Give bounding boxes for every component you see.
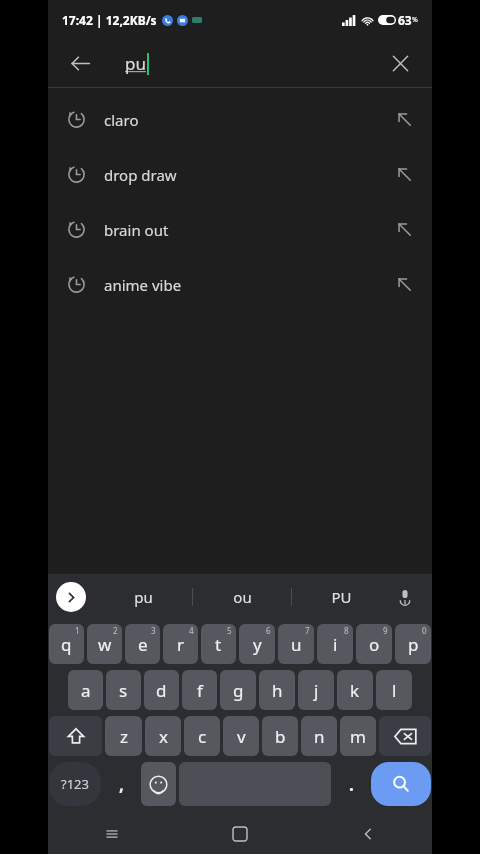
staticText: . — [349, 773, 354, 796]
button[interactable]: u — [278, 624, 314, 664]
button[interactable]: v — [223, 716, 259, 756]
staticText: p — [408, 633, 419, 656]
button[interactable]: l — [376, 670, 412, 710]
staticText: 3 — [151, 625, 156, 636]
staticText: 1 — [75, 625, 80, 636]
staticText: anime vibe — [104, 275, 182, 295]
button[interactable]: x — [145, 716, 181, 756]
staticText: , — [119, 773, 124, 796]
staticText: v — [237, 725, 246, 748]
button[interactable]: i — [317, 624, 353, 664]
button[interactable]: h — [259, 670, 295, 710]
staticText: o — [369, 633, 380, 656]
button[interactable]: Recents — [48, 814, 176, 854]
staticText: m — [350, 725, 366, 748]
staticText: % — [412, 15, 418, 25]
button[interactable]: Back — [304, 814, 432, 854]
button[interactable]: d — [144, 670, 179, 710]
button[interactable]: Search — [371, 762, 431, 806]
button[interactable]: z — [105, 716, 142, 756]
staticText: x — [159, 725, 168, 748]
staticText: 9 — [383, 625, 388, 636]
staticText: 63 — [398, 12, 412, 28]
staticText: 4 — [189, 625, 194, 636]
button[interactable]: a — [68, 670, 103, 710]
staticText: u — [291, 633, 302, 656]
staticText: 8 — [344, 625, 349, 636]
staticText: drop draw — [104, 165, 177, 185]
button[interactable]: f — [182, 670, 217, 710]
staticText: h — [272, 679, 283, 702]
button[interactable]: c — [184, 716, 220, 756]
staticText: g — [233, 679, 244, 702]
button[interactable]: claro — [48, 92, 432, 147]
staticText: 6 — [266, 625, 271, 636]
staticText: z — [120, 725, 128, 748]
staticText: i — [333, 633, 338, 656]
button[interactable]: k — [337, 670, 373, 710]
button[interactable]: b — [262, 716, 298, 756]
button[interactable]: m — [340, 716, 376, 756]
staticText: y — [253, 633, 262, 656]
staticText: pu — [125, 52, 146, 75]
staticText: pu — [134, 587, 153, 607]
button[interactable]: Back — [56, 40, 104, 87]
button[interactable]: n — [301, 716, 337, 756]
button[interactable]: j — [298, 670, 334, 710]
button[interactable]: q — [49, 624, 84, 664]
staticText: q — [61, 633, 72, 656]
button[interactable]: . — [334, 762, 368, 806]
staticText: l — [392, 679, 397, 702]
staticText: c — [198, 725, 207, 748]
button[interactable]: pu — [94, 574, 192, 620]
staticText: 7 — [305, 625, 310, 636]
staticText: 17:42 | 12,2KB/s — [62, 12, 157, 28]
staticText: b — [275, 725, 286, 748]
button[interactable]: g — [220, 670, 256, 710]
button[interactable]: ou — [193, 574, 291, 620]
button[interactable]: s — [106, 670, 141, 710]
button[interactable]: e — [125, 624, 160, 664]
button[interactable]: pu — [104, 40, 376, 87]
button[interactable]: o — [356, 624, 392, 664]
staticText: brain out — [104, 220, 169, 240]
button[interactable]: Emoji — [141, 762, 176, 806]
staticText: 2 — [113, 625, 118, 636]
button[interactable]: drop draw — [48, 147, 432, 202]
button[interactable]: Clear — [376, 40, 424, 87]
staticText: n — [314, 725, 325, 748]
button[interactable]: t — [201, 624, 236, 664]
staticText: 5 — [227, 625, 232, 636]
button[interactable]: ?123 — [49, 762, 101, 806]
staticText: e — [138, 633, 148, 656]
staticText: ou — [233, 587, 252, 607]
button[interactable]: w — [87, 624, 122, 664]
button[interactable]: p — [395, 624, 431, 664]
button[interactable]: Voice input — [388, 580, 422, 614]
staticText: w — [98, 633, 112, 656]
button[interactable]: y — [239, 624, 275, 664]
button[interactable]: Home — [176, 814, 304, 854]
staticText: t — [215, 633, 222, 656]
button[interactable]: Backspace — [379, 716, 431, 756]
button[interactable]: More — [56, 582, 86, 612]
button[interactable]: Shift — [49, 716, 102, 756]
button[interactable]: r — [163, 624, 198, 664]
button[interactable]: PU — [292, 574, 390, 620]
staticText: 0 — [422, 625, 427, 636]
staticText: j — [314, 679, 319, 702]
button[interactable]: brain out — [48, 202, 432, 257]
staticText: r — [177, 633, 185, 656]
button[interactable]: , — [104, 762, 138, 806]
staticText: PU — [331, 587, 352, 607]
staticText: d — [156, 679, 167, 702]
staticText: f — [197, 679, 203, 702]
staticText: ?123 — [61, 775, 89, 793]
staticText: k — [350, 679, 360, 702]
staticText: a — [81, 679, 91, 702]
staticText: claro — [104, 110, 139, 130]
button[interactable]: anime vibe — [48, 257, 432, 312]
staticText: s — [119, 679, 128, 702]
